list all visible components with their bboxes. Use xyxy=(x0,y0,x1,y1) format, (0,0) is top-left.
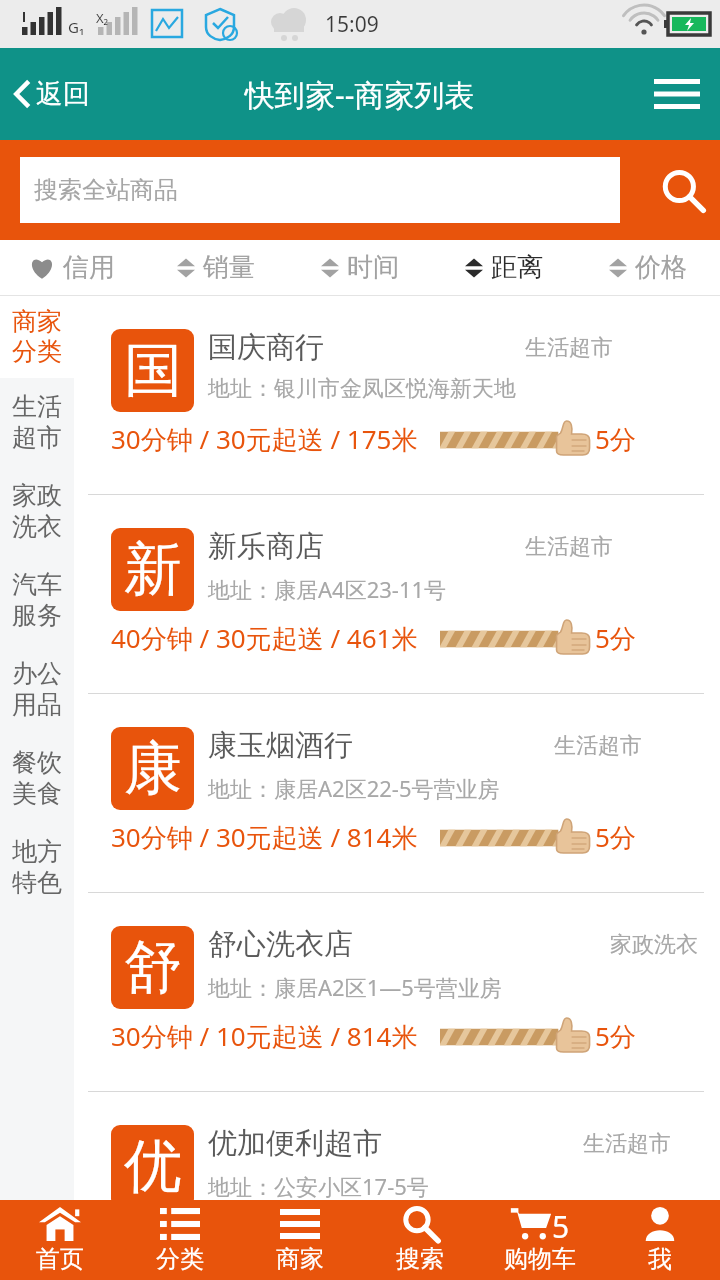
staticText: 返回 xyxy=(36,77,90,111)
button[interactable]: 搜索 xyxy=(360,1200,480,1280)
button[interactable]: 地方 特色 xyxy=(0,823,74,912)
staticText: 生活超市 xyxy=(554,732,642,760)
staticText: 分类 xyxy=(156,1244,204,1274)
staticText: 搜索 xyxy=(396,1244,444,1274)
staticText: 地址：康居A2区22-5号营业房 xyxy=(208,773,500,803)
button[interactable]: 优 xyxy=(74,1092,720,1280)
button[interactable]: 时间 xyxy=(288,240,432,295)
staticText: 30分钟 / 30元起送 / 900米 xyxy=(111,1217,418,1253)
staticText: 生活超市 xyxy=(583,1130,671,1158)
button[interactable]: 生活 超市 xyxy=(0,378,74,467)
button[interactable]: 返回 xyxy=(0,67,104,121)
staticText: 15:09 xyxy=(325,10,379,39)
staticText: 地址：康居A2区1—5号营业房 xyxy=(208,972,502,1002)
staticText: 销量 xyxy=(203,251,255,284)
staticText: 汽车 服务 xyxy=(12,569,62,632)
staticText: 优加便利超市 xyxy=(208,1125,382,1162)
staticText: 首页 xyxy=(36,1244,84,1274)
button[interactable]: 国 xyxy=(74,296,720,494)
staticText: 地址：公安小区17-5号 xyxy=(208,1171,429,1201)
staticText: 时间 xyxy=(347,251,399,284)
staticText: 生活超市 xyxy=(525,334,613,362)
staticText: 30分钟 / 10元起送 / 814米 xyxy=(111,1018,418,1054)
staticText: 地方 特色 xyxy=(12,836,62,899)
button[interactable]: 首页 xyxy=(0,1200,120,1280)
staticText: 家政洗衣 xyxy=(610,931,698,959)
staticText: 商家 分类 xyxy=(12,306,62,368)
staticText: 30分钟 / 30元起送 / 814米 xyxy=(111,819,418,855)
staticText: 家政 洗衣 xyxy=(12,480,62,543)
staticText: G₁ xyxy=(68,17,85,37)
button[interactable]: 信用 xyxy=(0,240,144,295)
button[interactable]: 家政 洗衣 xyxy=(0,467,74,556)
button[interactable]: 汽车 服务 xyxy=(0,556,74,645)
button[interactable]: 商家 xyxy=(240,1200,360,1280)
button[interactable]: 办公 用品 xyxy=(0,645,74,734)
staticText: 30分钟 / 30元起送 / 175米 xyxy=(111,421,418,457)
staticText: X₂ xyxy=(96,9,109,27)
staticText: 生活超市 xyxy=(525,533,613,561)
staticText: 新 xyxy=(124,533,182,606)
staticText: 康玉烟酒行 xyxy=(208,727,353,764)
staticText: 5分 xyxy=(595,1018,636,1054)
staticText: 距离 xyxy=(491,251,543,284)
button[interactable]: 新 xyxy=(74,495,720,693)
button[interactable]: 餐饮 美食 xyxy=(0,734,74,823)
staticText: 舒 xyxy=(124,931,182,1004)
staticText: 信用 xyxy=(63,251,115,284)
staticText: 优 xyxy=(124,1130,182,1203)
staticText: 办公 用品 xyxy=(12,658,62,721)
staticText: 地址：银川市金凤区悦海新天地 xyxy=(208,375,516,403)
staticText: 商家 xyxy=(276,1244,324,1274)
staticText: 5分 xyxy=(595,620,636,656)
staticText: 5 xyxy=(552,1206,570,1242)
staticText: 地址：康居A4区23-11号 xyxy=(208,574,447,604)
button[interactable]: 分类 xyxy=(120,1200,240,1280)
button[interactable]: 搜索全站商品 xyxy=(20,157,620,223)
button[interactable]: 康 xyxy=(74,694,720,892)
button[interactable]: 我 xyxy=(600,1200,720,1280)
button[interactable]: 价格 xyxy=(576,240,720,295)
button[interactable]: 销量 xyxy=(144,240,288,295)
button[interactable]: 5 xyxy=(480,1200,600,1280)
staticText: 我 xyxy=(648,1244,672,1274)
button[interactable]: Search xyxy=(644,154,720,226)
button[interactable]: 舒 xyxy=(74,893,720,1091)
staticText: 快到家--商家列表 xyxy=(245,74,475,115)
staticText: 价格 xyxy=(635,251,687,284)
staticText: 5分 xyxy=(595,421,636,457)
button[interactable]: Menu xyxy=(634,63,720,125)
staticText: 5分 xyxy=(595,819,636,855)
staticText: 40分钟 / 30元起送 / 461米 xyxy=(111,620,418,656)
staticText: 国庆商行 xyxy=(208,329,324,366)
staticText: 生活 超市 xyxy=(12,391,62,454)
button[interactable]: 距离 xyxy=(432,240,576,295)
staticText: 舒心洗衣店（康居店） xyxy=(208,926,409,963)
staticText: 康 xyxy=(124,732,182,805)
staticText: 国 xyxy=(124,334,182,407)
staticText: 搜索全站商品 xyxy=(34,175,178,205)
staticText: 新乐商店 xyxy=(208,528,324,565)
staticText: 餐饮 美食 xyxy=(12,747,62,810)
button[interactable]: 商家 分类 xyxy=(0,296,74,378)
staticText: 购物车 xyxy=(504,1244,576,1274)
